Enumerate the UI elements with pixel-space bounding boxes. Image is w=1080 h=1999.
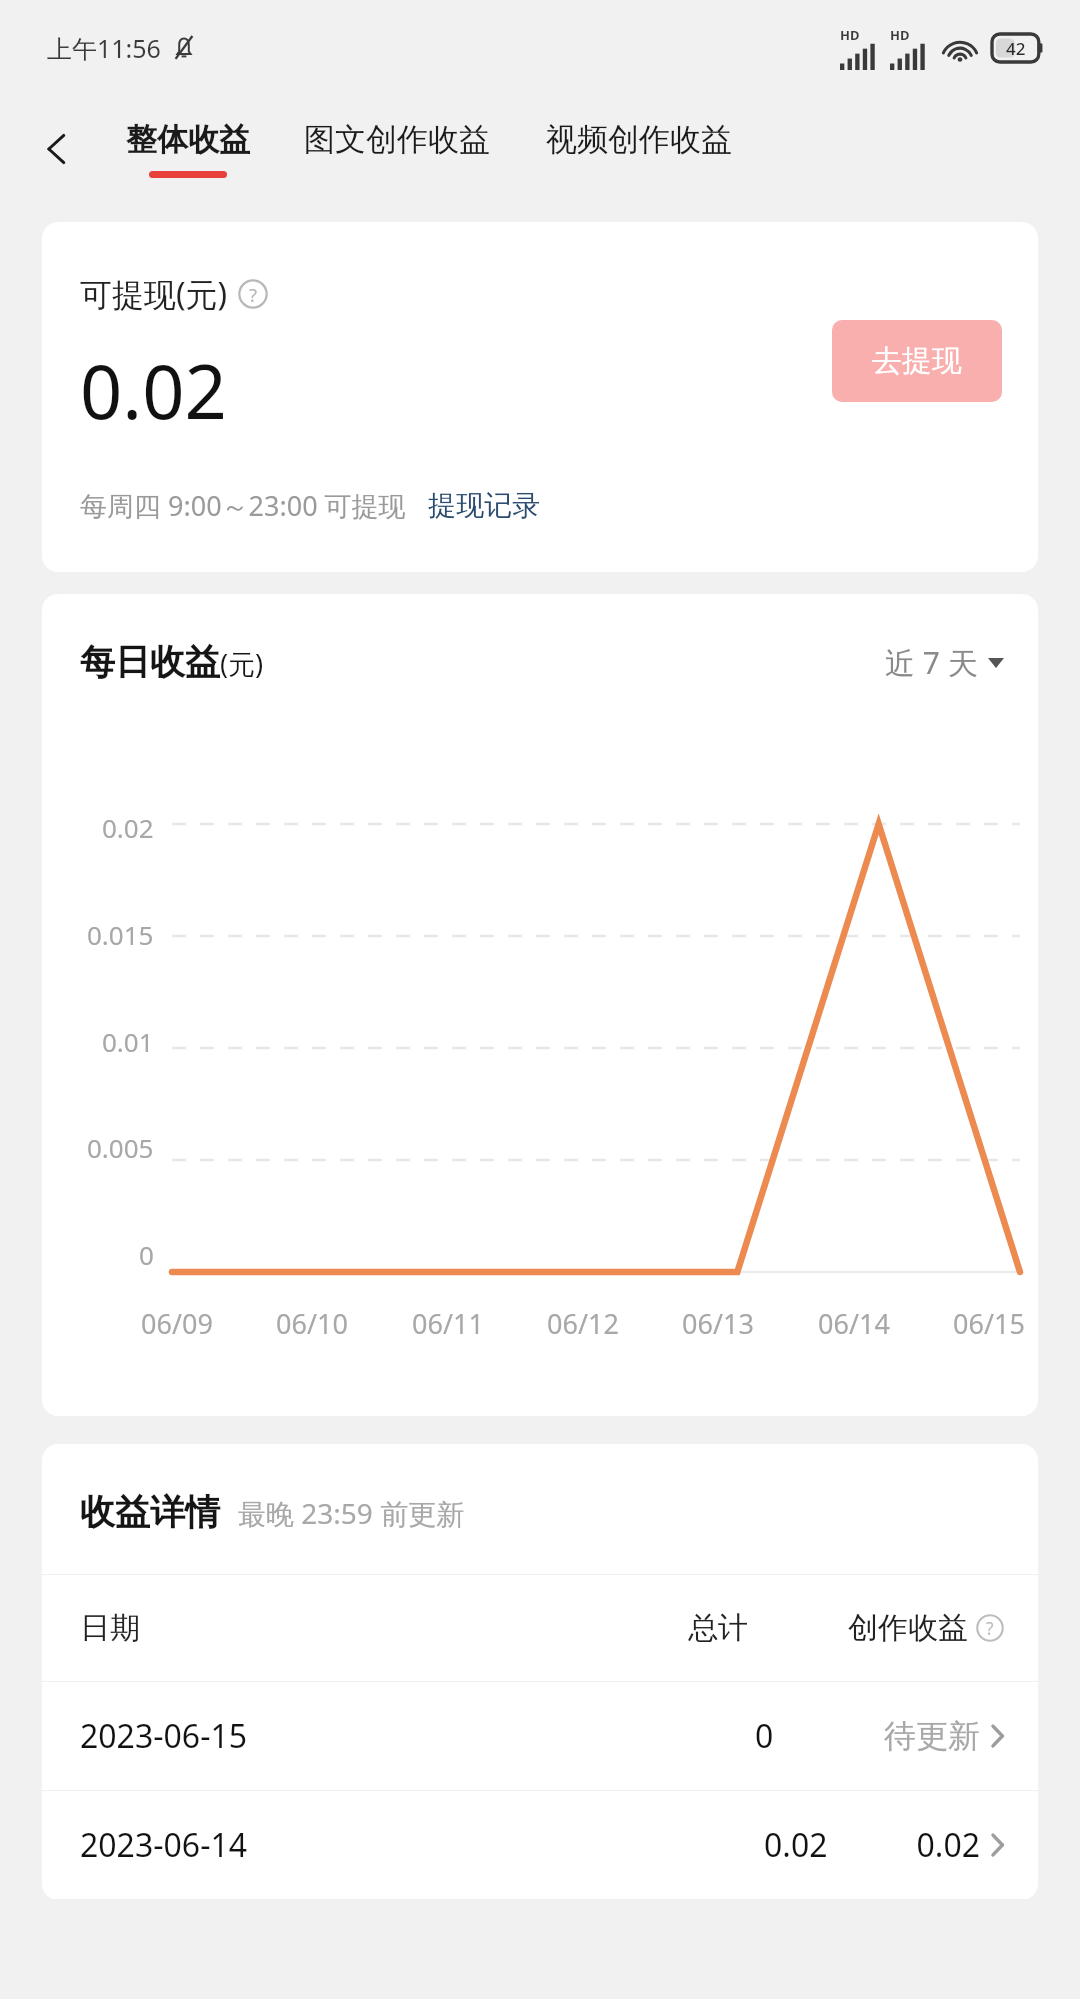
staticText: 0.01 xyxy=(102,1024,154,1059)
staticText: 0 xyxy=(755,1714,774,1758)
staticText: 近 7 天 xyxy=(885,642,978,683)
staticText: 06/14 xyxy=(818,1305,890,1342)
staticText: 42 xyxy=(1006,37,1026,60)
button[interactable]: Back xyxy=(26,118,88,180)
staticText: 2023-06-14 xyxy=(80,1823,248,1867)
staticText: 0.02 xyxy=(764,1823,828,1867)
button[interactable]: 提现记录 xyxy=(428,488,540,523)
staticText: ? xyxy=(986,1616,994,1640)
button[interactable]: 2023-06-15 xyxy=(42,1682,1038,1790)
staticText: 每周四 9:00～23:00 可提现 xyxy=(80,487,406,524)
staticText: 提现记录 xyxy=(428,488,540,523)
staticText: 总计 xyxy=(688,1609,748,1647)
staticText: 2023-06-15 xyxy=(80,1714,248,1758)
button[interactable]: 创作收益说明 xyxy=(976,1614,1004,1642)
staticText: HD xyxy=(840,26,860,44)
staticText: HD xyxy=(890,26,910,44)
staticText: 日期 xyxy=(80,1609,140,1647)
button[interactable]: 图文创作收益 xyxy=(302,116,492,182)
staticText: 可提现(元) xyxy=(80,272,228,316)
staticText: (元) xyxy=(220,645,264,682)
staticText: 06/13 xyxy=(682,1305,754,1342)
button[interactable]: 说明 xyxy=(238,279,268,309)
staticText: 视频创作收益 xyxy=(546,120,732,159)
staticText: 创作收益 xyxy=(848,1609,968,1647)
staticText: 每日收益 xyxy=(80,640,220,684)
staticText: 06/15 xyxy=(953,1305,1025,1342)
staticText: 最晚 23:59 前更新 xyxy=(238,1494,465,1532)
staticText: 0.02 xyxy=(916,1823,980,1867)
staticText: ? xyxy=(249,282,258,307)
button[interactable]: 整体收益 xyxy=(124,116,252,182)
button[interactable]: 视频创作收益 xyxy=(544,116,734,182)
staticText: 0 xyxy=(139,1237,154,1272)
staticText: 06/12 xyxy=(547,1305,619,1342)
staticText: 去提现 xyxy=(872,342,962,380)
staticText: 待更新 xyxy=(884,1716,980,1756)
staticText: 0.02 xyxy=(80,340,227,441)
staticText: 图文创作收益 xyxy=(304,120,490,159)
staticText: 上午11:56 xyxy=(47,31,161,65)
staticText: 0.02 xyxy=(102,810,154,845)
staticText: 整体收益 xyxy=(126,120,250,159)
staticText: 0.015 xyxy=(87,917,154,952)
button[interactable]: 去提现 xyxy=(832,320,1002,402)
staticText: 06/10 xyxy=(276,1305,348,1342)
staticText: 0.005 xyxy=(87,1130,154,1165)
staticText: 收益详情 xyxy=(80,1490,220,1534)
staticText: 06/09 xyxy=(141,1305,213,1342)
staticText: 06/11 xyxy=(412,1305,484,1342)
button[interactable]: 近 7 天 xyxy=(885,642,1004,683)
button[interactable]: 2023-06-14 xyxy=(42,1791,1038,1899)
